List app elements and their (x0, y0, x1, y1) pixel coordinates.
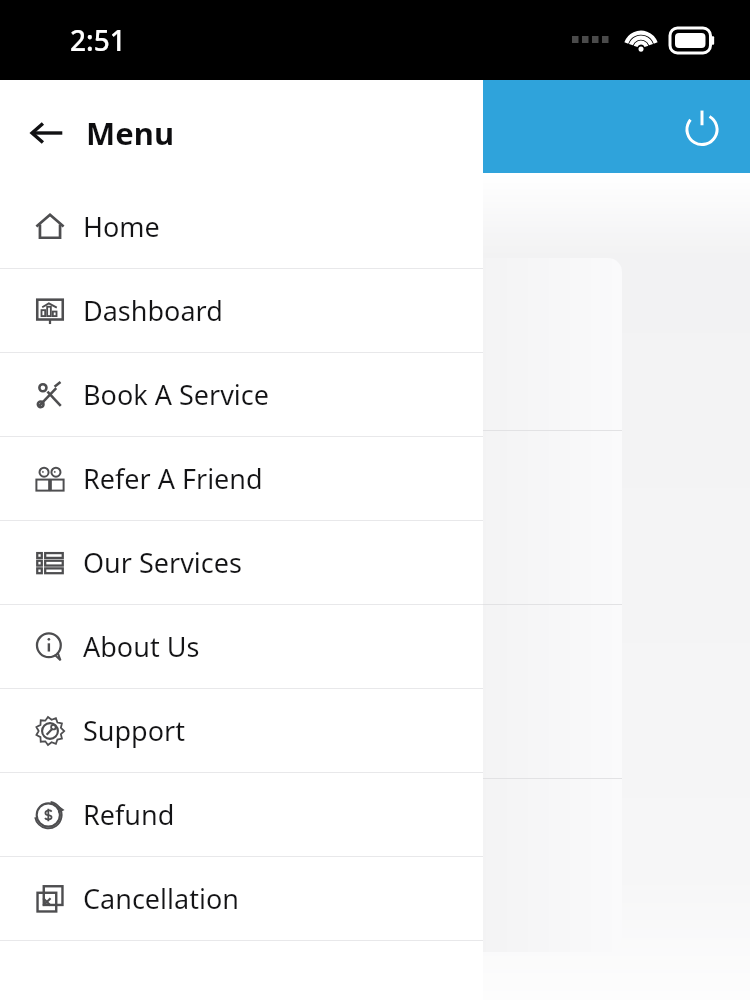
staticText: Support (83, 712, 185, 749)
staticText: Our Services (83, 544, 242, 581)
staticText: Home (83, 208, 160, 245)
button[interactable]: Logout (678, 103, 726, 151)
staticText: About Us (83, 628, 200, 665)
staticText: Refer A Friend (83, 460, 263, 497)
button[interactable]: About Us (0, 605, 483, 688)
staticText: Book A Service (83, 376, 270, 413)
staticText: Cancellation (83, 880, 239, 917)
button[interactable]: Refer A Friend (0, 437, 483, 520)
staticText: Menu (86, 112, 175, 154)
button[interactable]: Edit Account (128, 258, 622, 430)
button[interactable]: Dashboard (0, 269, 483, 352)
button[interactable]: Refund (0, 773, 483, 856)
button[interactable]: Coupons (128, 431, 622, 604)
button[interactable]: Logout (128, 779, 622, 952)
button[interactable]: Book A Service (0, 353, 483, 436)
button[interactable]: Support (0, 689, 483, 772)
staticText: 2:51 (70, 21, 126, 59)
staticText: Refund (83, 796, 175, 833)
button[interactable]: Back (0, 80, 483, 185)
button[interactable]: Cancellation (0, 857, 483, 940)
other: Back (30, 116, 64, 150)
staticText: Dashboard (83, 292, 223, 329)
button[interactable]: Our Services (0, 521, 483, 604)
button[interactable]: Home (0, 185, 483, 268)
button[interactable]: Booking History (128, 605, 622, 778)
